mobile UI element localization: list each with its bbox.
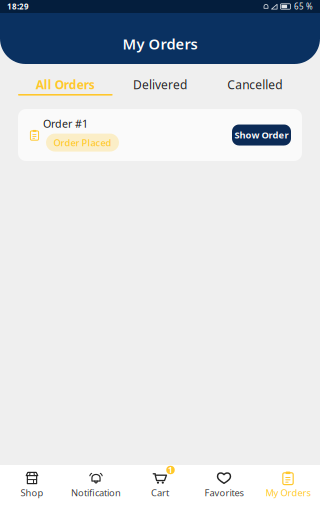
button[interactable]: 1 [128,465,192,512]
staticText: 18:29 [7,1,29,12]
staticText: Delivered [133,76,187,92]
staticText: Cancelled [227,76,282,92]
button[interactable]: Shop [0,465,64,512]
button[interactable]: Notification [64,465,128,512]
staticText: Show Order [234,129,288,141]
staticText: Order #1 [43,116,88,131]
button[interactable]: Cancelled [207,77,302,96]
staticText: 65 % [294,1,313,12]
staticText: All Orders [36,76,95,92]
staticText: Favorites [204,486,243,499]
staticText: My Orders [265,486,310,499]
button[interactable]: Show Order [232,124,291,145]
staticText: 1 [168,465,173,475]
button[interactable]: My Orders [256,465,320,512]
button[interactable]: All Orders [18,77,113,96]
button[interactable]: Delivered [113,77,207,96]
button[interactable]: Favorites [192,465,256,512]
staticText: My Orders [122,34,197,53]
staticText: Shop [20,486,43,499]
staticText: Cart [151,486,169,499]
staticText: Order Placed [53,136,111,149]
staticText: Notification [71,486,121,499]
